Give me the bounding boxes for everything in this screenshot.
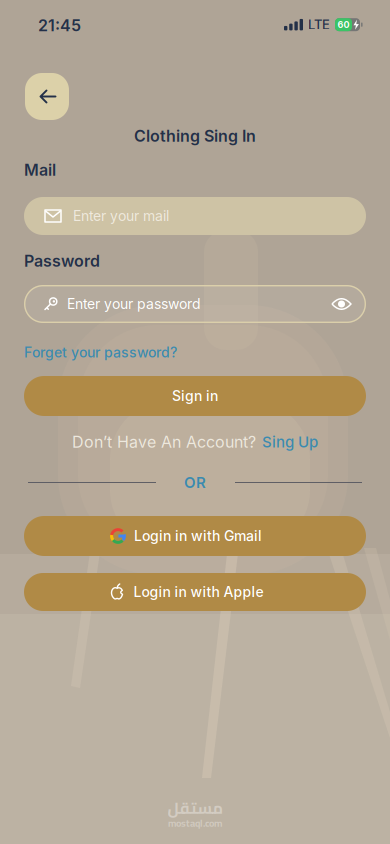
staticText: Enter your mail [73,208,169,224]
staticText: LTE [308,17,330,32]
staticText: Sign in [172,388,218,404]
staticText: 21:45 [38,16,81,35]
button[interactable]: Show password [331,298,366,310]
staticText: Forget your password? [24,344,177,361]
staticText: 60 [337,19,349,30]
button[interactable]: Forget your password? [24,343,177,362]
staticText: Don’t Have An Account? [72,433,256,451]
staticText: Login in with Gmail [134,528,262,544]
staticText: Sing Up [262,433,318,451]
staticText: Enter your password [67,296,201,312]
button[interactable]: Login in with Gmail [24,516,366,556]
button[interactable]: Back [25,73,69,120]
button[interactable]: Login in with Apple [24,573,366,611]
staticText: mostaql.com [168,814,222,832]
staticText: Mail [24,161,56,179]
staticText: Clothing Sing In [134,127,256,145]
staticText: Login in with Apple [133,584,263,600]
staticText: مستقل [167,793,223,823]
staticText: Password [24,252,100,270]
button[interactable]: Sign in [24,376,366,416]
button[interactable]: Sing Up [262,433,318,451]
staticText: OR [184,474,206,491]
